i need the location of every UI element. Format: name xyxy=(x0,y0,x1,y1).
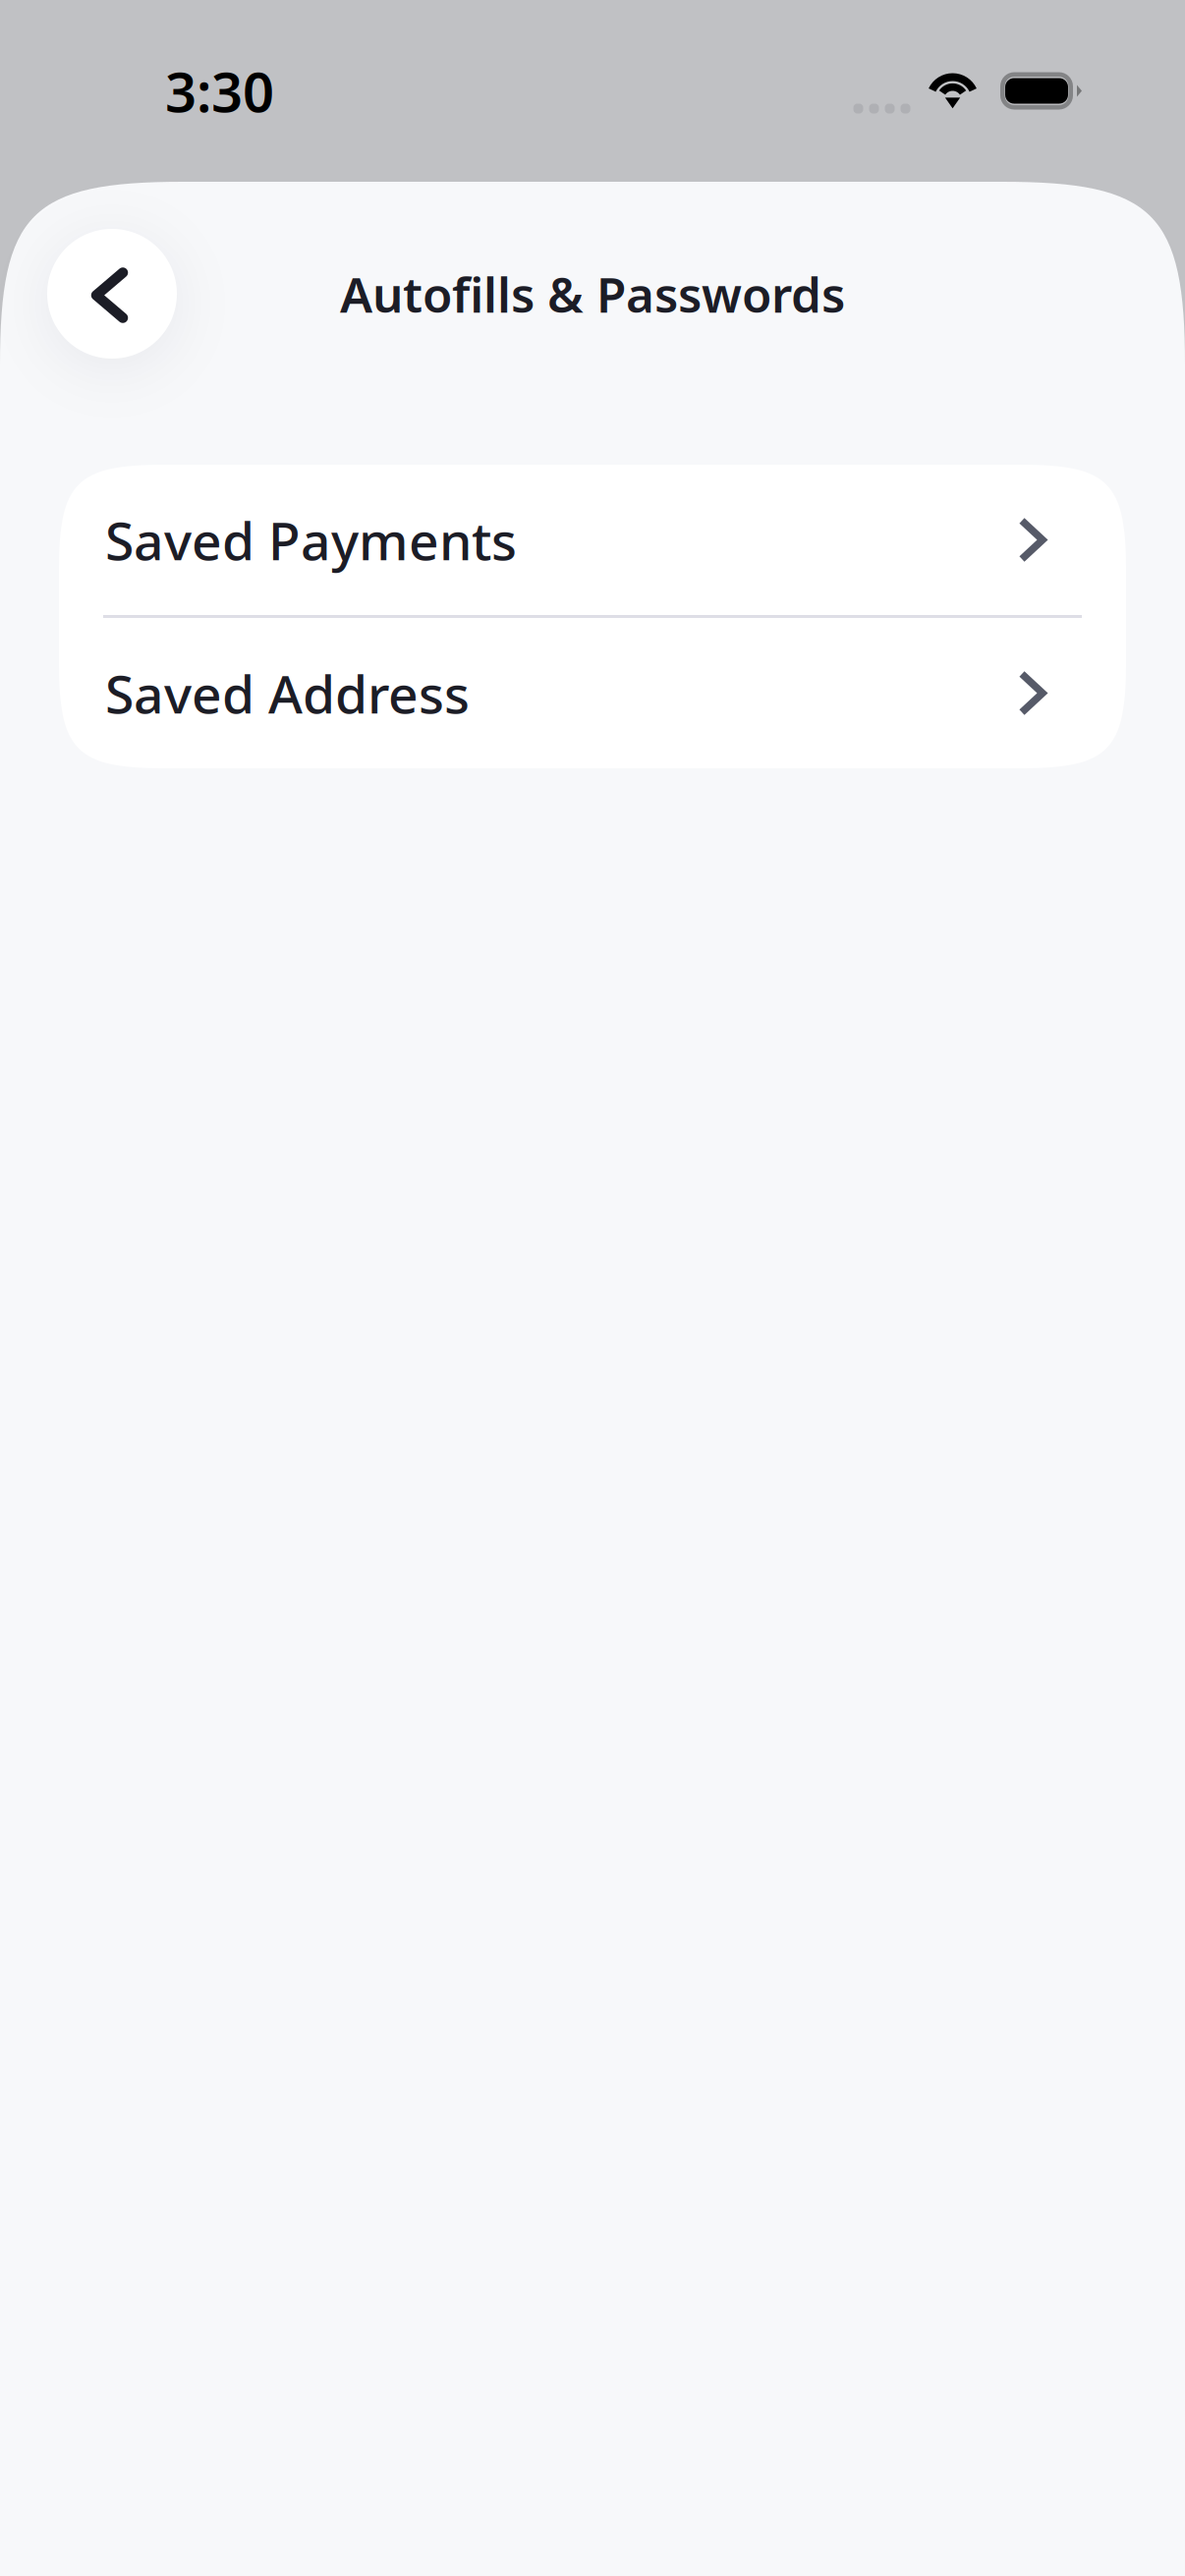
staticText: 3:30 xyxy=(165,54,274,127)
button[interactable]: Saved Address xyxy=(59,618,1126,768)
staticText: Saved Payments xyxy=(105,505,517,575)
staticText: Autofills & Passwords xyxy=(340,262,845,326)
button[interactable]: Back xyxy=(47,229,177,359)
staticText: Saved Address xyxy=(105,658,470,728)
button[interactable]: Saved Payments xyxy=(59,465,1126,615)
